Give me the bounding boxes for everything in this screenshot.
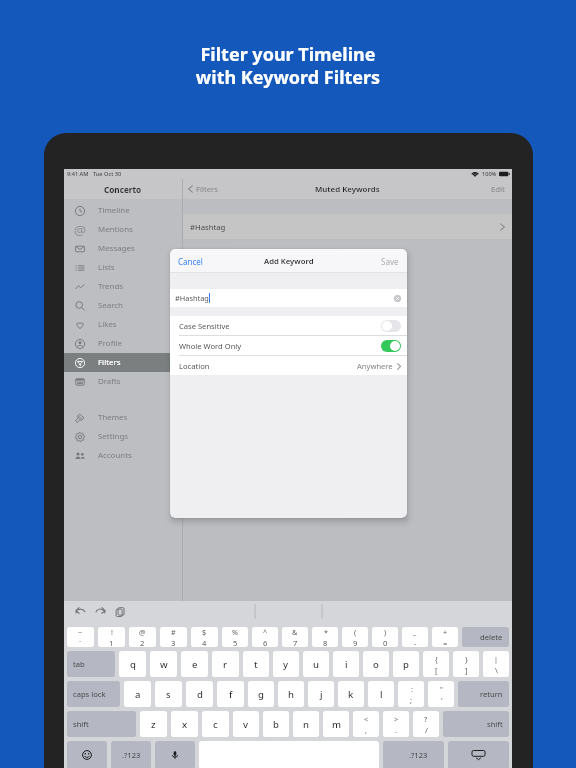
button[interactable]: o [363, 651, 389, 677]
button[interactable]: _ [402, 627, 428, 647]
button[interactable]: Filters [188, 179, 218, 199]
staticText: 2 [140, 638, 145, 647]
button[interactable]: Toggle [381, 340, 401, 352]
button[interactable]: Microphone [155, 741, 195, 768]
button[interactable]: ^ [252, 627, 278, 647]
button[interactable]: delete [462, 627, 509, 647]
staticText: Case Sensitive [179, 321, 230, 331]
staticText: Filter your Timeline with Keyword Filter… [0, 42, 576, 90]
button[interactable]: < [353, 711, 379, 737]
button[interactable]: n [293, 711, 319, 737]
button[interactable]: Edit [491, 179, 505, 199]
staticText: $ [202, 627, 207, 637]
button[interactable]: Lists [64, 258, 182, 277]
button[interactable]: Emoji [67, 741, 107, 768]
button[interactable]: m [323, 711, 349, 737]
button[interactable]: u [303, 651, 329, 677]
button[interactable]: i [333, 651, 359, 677]
staticText: k [348, 688, 354, 701]
button[interactable]: Accounts [64, 446, 182, 465]
button[interactable]: Cancel [178, 249, 203, 273]
button[interactable]: l [368, 681, 394, 707]
button[interactable]: .?123 [111, 741, 151, 768]
button[interactable]: f [217, 681, 244, 707]
button[interactable]: g [248, 681, 274, 707]
button[interactable]: tab [67, 651, 115, 677]
button[interactable]: q [119, 651, 146, 677]
staticText: y [283, 658, 289, 671]
button[interactable]: | [483, 651, 509, 677]
button[interactable]: Paste [114, 606, 126, 618]
button[interactable]: * [312, 627, 338, 647]
button[interactable]: Filters [64, 353, 182, 372]
button[interactable]: # [160, 627, 187, 647]
button[interactable]: Location [170, 356, 407, 375]
staticText: Tue Oct 30 [93, 170, 122, 178]
button[interactable]: Redo [94, 605, 107, 618]
button[interactable]: #Hashtag [183, 214, 512, 239]
other: Hide keyboard [472, 750, 485, 760]
button[interactable]: Trends [64, 277, 182, 296]
staticText: 8 [323, 638, 328, 647]
button[interactable]: Toggle [381, 320, 401, 332]
button[interactable]: ! [98, 627, 125, 647]
button[interactable]: > [383, 711, 409, 737]
button[interactable]: b [263, 711, 289, 737]
button[interactable]: Search [64, 296, 182, 315]
button[interactable]: Profile [64, 334, 182, 353]
button[interactable]: d [186, 681, 213, 707]
button[interactable]: : [398, 681, 424, 707]
button[interactable]: return [458, 681, 509, 707]
button[interactable]: Case Sensitive [170, 316, 407, 335]
button[interactable]: Themes [64, 408, 182, 427]
button[interactable]: % [222, 627, 248, 647]
button[interactable]: @ [129, 627, 156, 647]
staticText: i [345, 658, 348, 671]
button[interactable]: .?123 [383, 741, 444, 768]
button[interactable]: @ [64, 220, 182, 239]
other: Microphone [170, 750, 180, 760]
button[interactable]: Hide keyboard [448, 741, 509, 768]
button[interactable]: p [393, 651, 419, 677]
staticText: Cancel [178, 256, 203, 267]
button[interactable]: e [181, 651, 208, 677]
button[interactable]: shift [67, 711, 136, 737]
button[interactable]: v [233, 711, 259, 737]
button[interactable]: y [273, 651, 299, 677]
button[interactable]: t [243, 651, 269, 677]
button[interactable]: j [308, 681, 334, 707]
button[interactable]: Drafts [64, 372, 182, 391]
button[interactable]: & [282, 627, 308, 647]
button[interactable]: z [140, 711, 167, 737]
staticText: Trends [98, 281, 124, 292]
button[interactable]: shift [443, 711, 509, 737]
button[interactable]: Messages [64, 239, 182, 258]
button[interactable]: Settings [64, 427, 182, 446]
button[interactable]: r [212, 651, 239, 677]
button[interactable]: x [171, 711, 198, 737]
button[interactable]: " [428, 681, 454, 707]
button[interactable]: { [423, 651, 449, 677]
button[interactable]: } [453, 651, 479, 677]
staticText: ( [354, 627, 357, 637]
button[interactable]: + [432, 627, 458, 647]
button[interactable]: Save [381, 249, 399, 273]
button[interactable]: w [150, 651, 177, 677]
button[interactable]: c [202, 711, 229, 737]
button[interactable]: k [338, 681, 364, 707]
button[interactable]: s [155, 681, 182, 707]
button[interactable]: Undo [74, 605, 87, 618]
button[interactable]: ? [413, 711, 439, 737]
button[interactable]: ) [372, 627, 398, 647]
button[interactable]: ~ [67, 627, 94, 647]
button[interactable]: $ [191, 627, 218, 647]
button[interactable]: caps lock [67, 681, 120, 707]
button[interactable]: a [124, 681, 151, 707]
button[interactable]: Likes [64, 315, 182, 334]
button[interactable]: Whole Word Only [170, 336, 407, 355]
button[interactable]: h [278, 681, 304, 707]
button[interactable]: ( [342, 627, 368, 647]
button[interactable]: Timeline [64, 201, 182, 220]
staticText: + [443, 627, 448, 637]
